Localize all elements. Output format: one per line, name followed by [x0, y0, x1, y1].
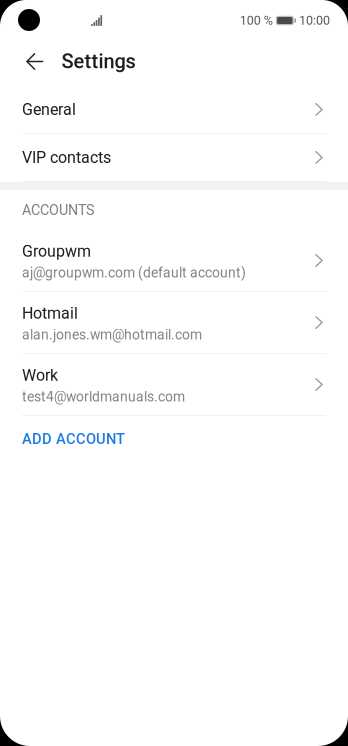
staticText: VIP contacts [22, 148, 111, 167]
staticText: alan.jones.wm@hotmail.com [22, 327, 202, 343]
staticText: Settings [61, 50, 135, 73]
staticText: ADD ACCOUNT [22, 430, 125, 448]
staticText: 100 % [240, 13, 273, 28]
staticText: ACCOUNTS [22, 202, 94, 218]
button[interactable]: Hotmail [0, 292, 348, 354]
button[interactable]: Back [0, 41, 61, 82]
button[interactable]: VIP contacts [0, 134, 348, 182]
button[interactable]: ADD ACCOUNT [0, 416, 348, 459]
staticText: Groupwm [22, 242, 91, 261]
button[interactable]: Groupwm [0, 230, 348, 292]
button[interactable]: General [0, 86, 348, 134]
button[interactable]: Work [0, 354, 348, 416]
staticText: Work [22, 366, 58, 385]
staticText: aj@groupwm.com (default account) [22, 265, 246, 281]
staticText: General [22, 100, 76, 119]
staticText: test4@worldmanuals.com [22, 389, 185, 405]
staticText: 10:00 [299, 13, 330, 28]
staticText: Hotmail [22, 304, 78, 323]
